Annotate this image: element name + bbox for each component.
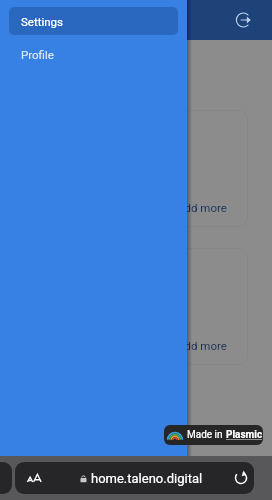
button[interactable]: Made in	[164, 425, 263, 445]
button[interactable]: Add more	[22, 248, 248, 365]
button[interactable]: Text size	[15, 462, 254, 494]
staticText: home.taleno.digital	[91, 471, 203, 486]
button[interactable]: Profile	[9, 44, 178, 64]
staticText: Made in	[187, 429, 226, 441]
staticText: Profile	[21, 48, 54, 61]
button[interactable]: Reload	[231, 468, 251, 488]
staticText: Settings	[21, 15, 63, 28]
button[interactable]: Text size	[25, 462, 47, 494]
button[interactable]: Tabs	[0, 462, 12, 494]
staticText: Add more	[177, 201, 227, 214]
staticText: Add more	[177, 339, 227, 352]
staticText: Plasmic	[226, 429, 263, 441]
button[interactable]: Settings	[9, 7, 178, 35]
button[interactable]: Add more	[22, 110, 248, 227]
button[interactable]: Log out	[232, 7, 258, 33]
